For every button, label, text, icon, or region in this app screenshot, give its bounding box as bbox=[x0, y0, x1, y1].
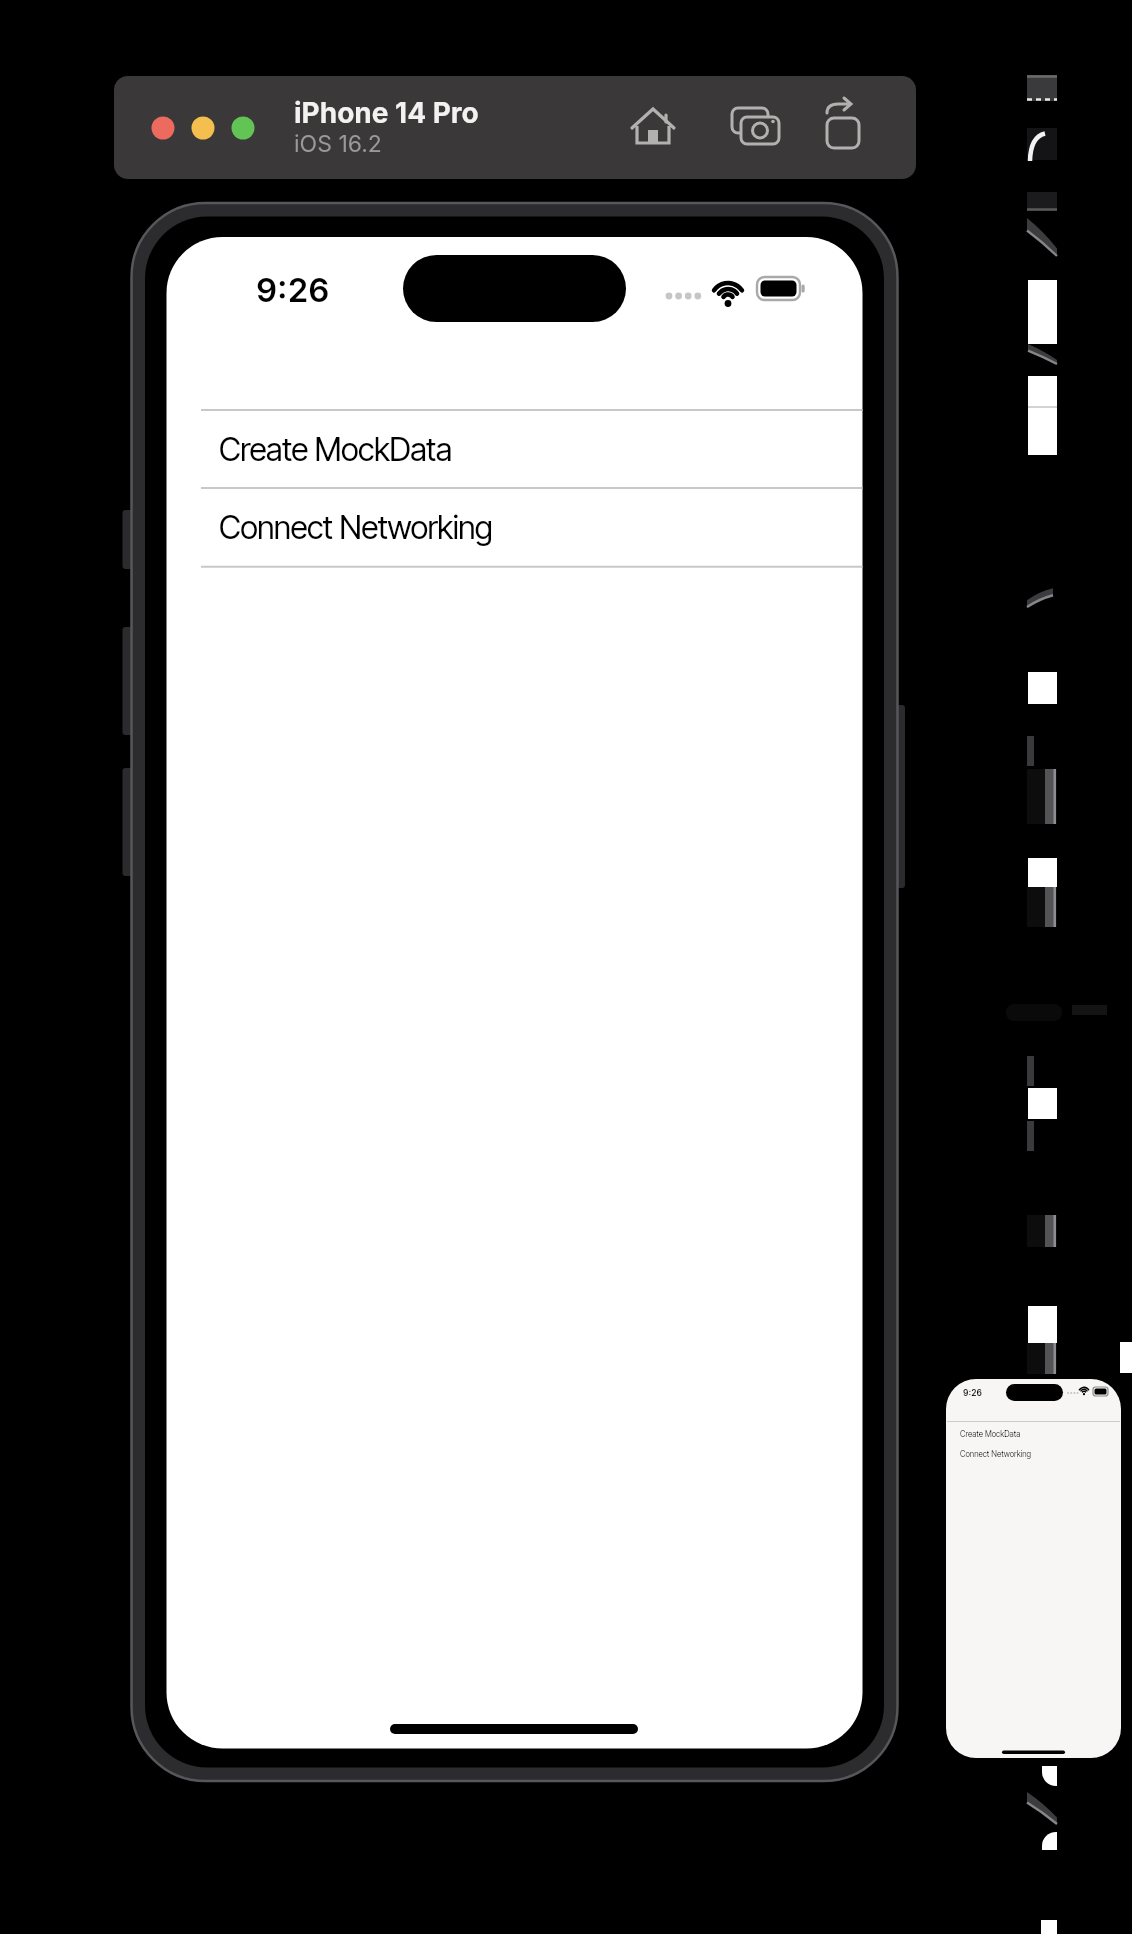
button[interactable] bbox=[822, 103, 867, 148]
staticText: Connect Networking bbox=[219, 508, 493, 547]
button[interactable] bbox=[631, 103, 676, 148]
staticText: Connect Networking bbox=[960, 1449, 1032, 1459]
staticText: 9:26 bbox=[963, 1388, 982, 1398]
button[interactable] bbox=[731, 103, 776, 148]
button[interactable]: Create MockData bbox=[167, 410, 863, 488]
staticText: 9:26 bbox=[256, 270, 330, 310]
staticText: iPhone 14 Pro bbox=[294, 96, 479, 130]
button[interactable]: Connect Networking bbox=[167, 488, 863, 567]
staticText: Create MockData bbox=[219, 430, 452, 469]
staticText: iOS 16.2 bbox=[294, 130, 382, 158]
staticText: Create MockData bbox=[960, 1429, 1021, 1439]
